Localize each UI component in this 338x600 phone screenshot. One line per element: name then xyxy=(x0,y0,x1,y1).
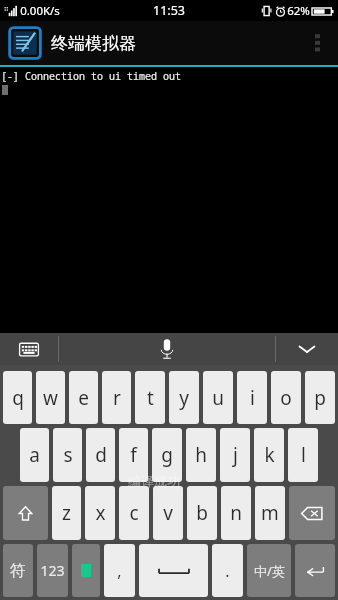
button[interactable]: x xyxy=(85,486,115,540)
button[interactable]: y xyxy=(169,371,199,424)
staticText: , xyxy=(117,560,122,582)
staticText: d xyxy=(95,442,107,468)
button[interactable]: c xyxy=(119,486,149,540)
staticText: 终端模拟器 xyxy=(51,33,136,54)
button[interactable]: , xyxy=(104,544,135,597)
staticText: f xyxy=(130,442,137,468)
staticText: j xyxy=(233,442,238,468)
button[interactable]: i xyxy=(237,371,267,424)
button[interactable]: j xyxy=(220,428,250,482)
staticText: x xyxy=(95,500,106,526)
button[interactable]: w xyxy=(36,371,65,424)
button[interactable]: r xyxy=(102,371,131,424)
staticText: s xyxy=(63,442,73,468)
button[interactable]: g xyxy=(152,428,182,482)
button[interactable]: n xyxy=(221,486,251,540)
button[interactable]: . xyxy=(212,544,243,597)
staticText: o xyxy=(280,385,292,411)
button[interactable]: s xyxy=(53,428,82,482)
staticText: r xyxy=(113,385,121,411)
staticText: i xyxy=(250,385,255,411)
staticText: . xyxy=(225,560,230,582)
button[interactable]: u xyxy=(203,371,233,424)
staticText: u xyxy=(212,385,224,411)
button[interactable]: Backspace xyxy=(289,486,335,540)
button[interactable]: a xyxy=(20,428,49,482)
button[interactable]: Hide keyboard xyxy=(276,333,338,365)
button[interactable]: t xyxy=(135,371,165,424)
staticText: [-] Connection to ui timed out xyxy=(1,69,181,83)
staticText: e xyxy=(78,385,89,411)
staticText: w xyxy=(43,385,58,411)
button[interactable]: Shift xyxy=(3,486,48,540)
staticText: g xyxy=(161,442,173,468)
button[interactable]: f xyxy=(119,428,148,482)
staticText: t xyxy=(147,385,154,411)
button[interactable]: h xyxy=(186,428,216,482)
staticText: 中/英 xyxy=(254,562,285,580)
staticText: a xyxy=(29,442,40,468)
button[interactable]: d xyxy=(86,428,115,482)
staticText: 62% xyxy=(287,3,310,19)
button[interactable]: Space xyxy=(139,544,208,597)
button[interactable]: Input method xyxy=(72,544,100,597)
button[interactable]: 123 xyxy=(37,544,68,597)
button[interactable]: z xyxy=(52,486,81,540)
staticText: 符 xyxy=(10,561,26,581)
button[interactable]: m xyxy=(255,486,285,540)
staticText: v xyxy=(163,500,173,526)
staticText: q xyxy=(12,385,24,411)
staticText: n xyxy=(230,500,242,526)
button[interactable]: 中/英 xyxy=(247,544,291,597)
button[interactable]: k xyxy=(254,428,284,482)
button[interactable]: v xyxy=(153,486,183,540)
button[interactable]: o xyxy=(271,371,301,424)
button[interactable]: q xyxy=(3,371,32,424)
staticText: 编译成功 xyxy=(128,473,180,489)
staticText: 0.00K/s xyxy=(20,3,60,19)
button[interactable]: e xyxy=(69,371,98,424)
staticText: z xyxy=(62,500,71,526)
button[interactable]: 符 xyxy=(3,544,33,597)
staticText: k xyxy=(264,442,275,468)
button[interactable]: l xyxy=(288,428,318,482)
button[interactable]: Switch keyboard xyxy=(0,333,58,365)
staticText: l xyxy=(301,442,306,468)
button[interactable]: p xyxy=(305,371,335,424)
staticText: h xyxy=(195,442,207,468)
button[interactable]: b xyxy=(187,486,217,540)
staticText: b xyxy=(196,500,208,526)
button[interactable]: More options xyxy=(300,21,334,65)
staticText: y xyxy=(179,385,189,411)
staticText: m xyxy=(261,500,279,526)
staticText: p xyxy=(314,385,326,411)
button[interactable]: Voice input xyxy=(59,333,275,365)
staticText: c xyxy=(129,500,139,526)
staticText: 123 xyxy=(40,561,65,580)
button[interactable]: Enter xyxy=(295,544,335,597)
staticText: 11:53 xyxy=(153,2,185,19)
